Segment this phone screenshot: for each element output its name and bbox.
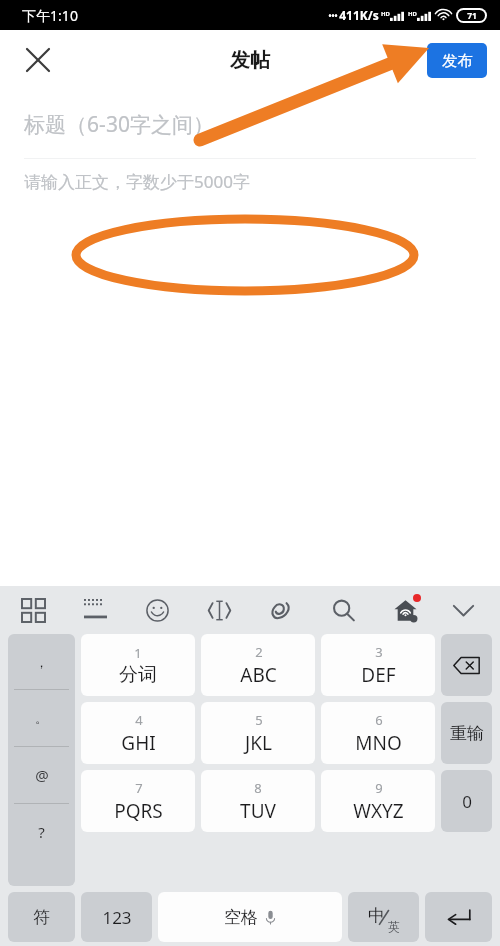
button[interactable]: Panels [11,588,55,632]
staticText: @ [35,765,49,785]
staticText: HD [408,10,417,18]
staticText: 符 [33,907,50,928]
button[interactable]: 8 [201,770,315,832]
button[interactable]: 符 [8,892,75,942]
staticText: 71 [467,10,477,21]
button[interactable]: Close [14,36,62,84]
button[interactable]: Home [383,588,427,632]
button[interactable]: Keyboard layout [73,588,117,632]
staticText: JKL [245,730,272,756]
button[interactable]: 5 [201,702,315,764]
staticText: TUV [240,798,276,824]
staticText: 分词 [119,663,157,687]
staticText: 英 [388,919,400,934]
button[interactable]: 7 [81,770,195,832]
staticText: 空格 [224,907,258,928]
staticText: 。 [35,710,48,726]
staticText: ••• [328,10,338,21]
button[interactable]: Backspace [441,634,492,696]
button[interactable]: Move cursor [197,588,241,632]
staticText: ， [35,654,48,670]
staticText: 3 [375,643,383,661]
button[interactable]: 4 [81,702,195,764]
staticText: 7 [135,779,143,797]
button[interactable]: 9 [321,770,435,832]
staticText: 发帖 [230,48,270,73]
staticText: 发布 [442,51,473,71]
staticText: PQRS [114,798,163,824]
staticText: 5 [255,711,263,729]
staticText: 1 [134,644,142,662]
button[interactable]: 123 [81,892,152,942]
button[interactable]: 1 [81,634,195,696]
button[interactable]: 2 [201,634,315,696]
staticText: 9 [375,779,383,797]
button[interactable]: 0 [441,770,492,832]
button[interactable]: ， [8,634,75,689]
staticText: 下午1:10 [22,6,78,25]
button[interactable]: ? [8,804,75,860]
button[interactable]: Clipboard [259,588,303,632]
staticText: 4 [135,711,143,729]
staticText: 标题（6-30字之间） [24,110,214,139]
staticText: 8 [254,779,262,797]
staticText: 6 [375,711,383,729]
staticText: HD [381,10,390,18]
staticText: ? [38,822,45,842]
staticText: 2 [255,643,263,661]
staticText: 中 [368,905,385,926]
staticText: 0 [462,790,472,813]
button[interactable]: 3 [321,634,435,696]
staticText: DEF [361,662,396,688]
staticText: 重输 [450,723,484,744]
button[interactable]: Search [321,588,365,632]
staticText: MNO [355,730,402,756]
button[interactable]: 发布 [427,43,487,78]
button[interactable]: Hide keyboard [441,588,485,632]
staticText: ABC [240,662,277,688]
staticText: 123 [102,906,132,929]
staticText: GHI [121,730,156,756]
button[interactable]: 空格 [158,892,342,942]
button[interactable]: 重输 [441,702,492,764]
button[interactable]: @ [8,747,75,803]
staticText: WXYZ [353,798,404,824]
staticText: 411K/s [339,7,379,23]
button[interactable]: 中 [348,892,419,942]
button[interactable]: Enter [425,892,492,942]
button[interactable]: Emoji [135,588,179,632]
staticText: 请输入正文，字数少于5000字 [24,170,250,193]
button[interactable]: 6 [321,702,435,764]
